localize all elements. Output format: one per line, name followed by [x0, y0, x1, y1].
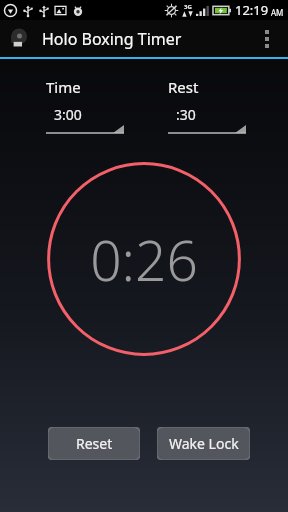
button[interactable]: 3:00 — [46, 103, 124, 134]
staticText: 0:26 — [90, 222, 198, 297]
button[interactable]: Wake Lock — [157, 427, 250, 460]
staticText: :30 — [176, 105, 196, 124]
staticText: 3G — [184, 3, 192, 11]
button[interactable]: More options — [252, 20, 282, 57]
staticText: Time — [46, 77, 81, 97]
staticText: AM — [271, 7, 284, 18]
button[interactable]: :30 — [168, 103, 246, 134]
staticText: 3:00 — [54, 105, 82, 124]
staticText: Rest — [168, 77, 199, 97]
staticText: Wake Lock — [169, 434, 239, 453]
staticText: 12:19 — [235, 1, 269, 19]
button[interactable]: Reset — [48, 427, 140, 460]
staticText: Holo Boxing Timer — [42, 28, 182, 50]
staticText: Reset — [76, 434, 113, 453]
